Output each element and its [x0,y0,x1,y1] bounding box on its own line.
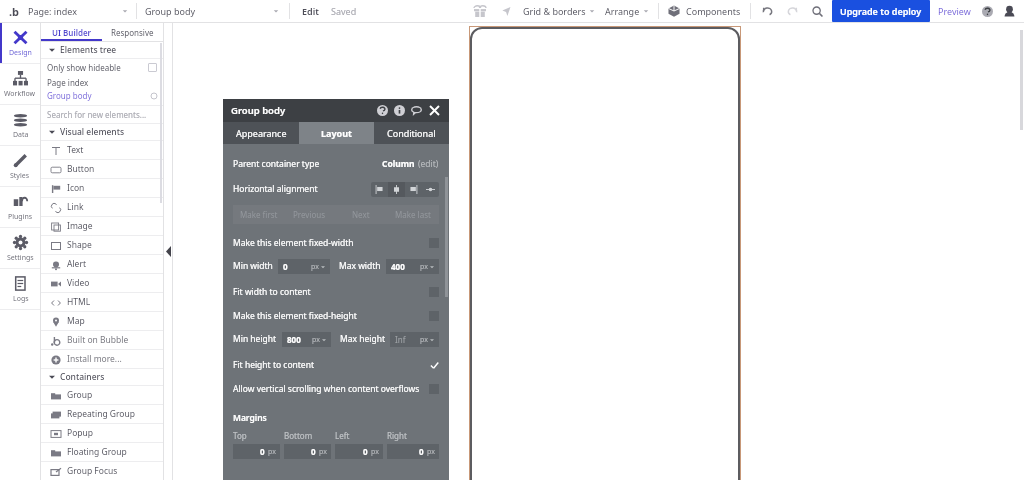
button[interactable]: Data [0,105,40,145]
staticText: Layout [321,127,352,139]
button[interactable]: Alert [41,255,163,273]
button[interactable]: Fit height to content [233,358,439,372]
staticText: Text [67,144,84,156]
button[interactable]: Make last [387,205,439,224]
button[interactable]: Group Focus [41,462,163,480]
button[interactable]: Group body [145,2,279,20]
staticText: Workflow [4,89,36,99]
button[interactable]: Floating Group [41,443,163,461]
button[interactable]: Preview [938,5,971,17]
button[interactable]: Info [393,104,406,117]
staticText: Min width [233,260,273,272]
button[interactable]: Allow vertical scrolling when content ov… [233,382,439,396]
staticText: Appearance [236,127,287,139]
button[interactable]: 400 [386,259,439,274]
button[interactable]: Align 1 [388,182,405,197]
staticText: Floating Group [67,446,127,458]
button[interactable]: Close [428,104,441,117]
button[interactable]: Plugins [0,187,40,227]
button[interactable]: Video [41,274,163,292]
button[interactable]: Help [979,3,995,19]
button[interactable]: Comments [410,104,423,117]
button[interactable]: Logs [0,269,40,309]
button[interactable]: Help [376,104,389,117]
button[interactable]: (edit) [418,158,439,170]
button[interactable]: Align 3 [422,182,439,197]
staticText: Repeating Group [67,408,135,420]
button[interactable]: Only show hideable [41,59,163,76]
button[interactable]: Workflow [0,64,40,104]
button[interactable]: Page index [41,76,163,89]
button[interactable]: Inf [390,332,439,347]
button[interactable]: Align 0 [371,182,388,197]
button[interactable]: Install more... [41,350,163,368]
button[interactable]: Image [41,217,163,235]
staticText: Column [382,158,415,170]
button[interactable]: Redo [783,2,801,20]
button[interactable]: Page: index [28,2,128,20]
button[interactable]: Bubble logo [6,3,22,19]
button[interactable]: Built on Bubble [41,331,163,349]
button[interactable]: Repeating Group [41,405,163,423]
staticText: Make this element fixed-height [233,310,357,322]
button[interactable]: Components [667,4,741,18]
button[interactable]: UI Builder [41,23,102,41]
button[interactable]: Styles [0,146,40,186]
staticText: Allow vertical scrolling when content ov… [233,383,420,395]
button[interactable]: 0 [387,444,439,459]
button[interactable]: 800 [282,332,331,347]
button[interactable]: Search for new elements... [41,106,163,123]
button[interactable]: Layout [299,122,374,144]
button[interactable]: Text [41,141,163,159]
button[interactable]: Containers [41,369,163,385]
button[interactable]: Pointer [497,2,515,20]
button[interactable] [470,27,740,480]
button[interactable]: 0 [233,444,280,459]
staticText: Popup [67,427,93,439]
button[interactable]: 0 [284,444,331,459]
button[interactable]: Group body [41,89,163,102]
button[interactable]: Make first [233,205,284,224]
button[interactable]: 0 [335,444,383,459]
button[interactable]: Align 2 [405,182,422,197]
staticText: px [427,447,435,457]
staticText: .b [9,4,20,19]
button[interactable]: Next [335,205,387,224]
button[interactable]: Make this element fixed-height [233,309,439,323]
staticText: Group body [231,104,286,117]
button[interactable]: Elements tree [41,42,163,58]
button[interactable]: Shape [41,236,163,254]
staticText: Plugins [8,212,33,222]
button[interactable]: Upgrade to deploy [832,0,930,22]
button[interactable]: Button [41,160,163,178]
button[interactable]: Group [41,386,163,404]
button[interactable]: Conditional [374,122,449,144]
button[interactable]: Appearance [223,122,299,144]
button[interactable]: Search [808,2,826,20]
button[interactable]: Edit [300,5,321,17]
button[interactable]: Undo [758,2,776,20]
button[interactable]: Gifts [471,2,489,20]
button[interactable]: Icon [41,179,163,197]
button[interactable]: Account [1001,3,1017,19]
staticText: 0 [283,261,288,272]
staticText: 0 [363,446,368,457]
button[interactable]: Map [41,312,163,330]
button[interactable]: Grid & borders [523,5,595,17]
button[interactable]: Responsive [102,23,163,41]
button[interactable]: Collapse panel [166,246,171,257]
button[interactable]: Fit width to content [233,285,439,299]
button[interactable]: Design [0,23,40,63]
button[interactable]: Popup [41,424,163,442]
button[interactable]: Make this element fixed-width [233,236,439,250]
button[interactable]: Visual elements [41,124,163,140]
button[interactable]: HTML [41,293,163,311]
button[interactable]: 0 [278,259,330,274]
button[interactable]: Previous [284,205,335,224]
button[interactable]: Settings [0,228,40,268]
staticText: Make first [240,209,278,220]
staticText: Group Focus [67,465,118,477]
button[interactable]: Arrange [605,5,649,17]
staticText: Page index [47,77,89,88]
button[interactable]: Link [41,198,163,216]
